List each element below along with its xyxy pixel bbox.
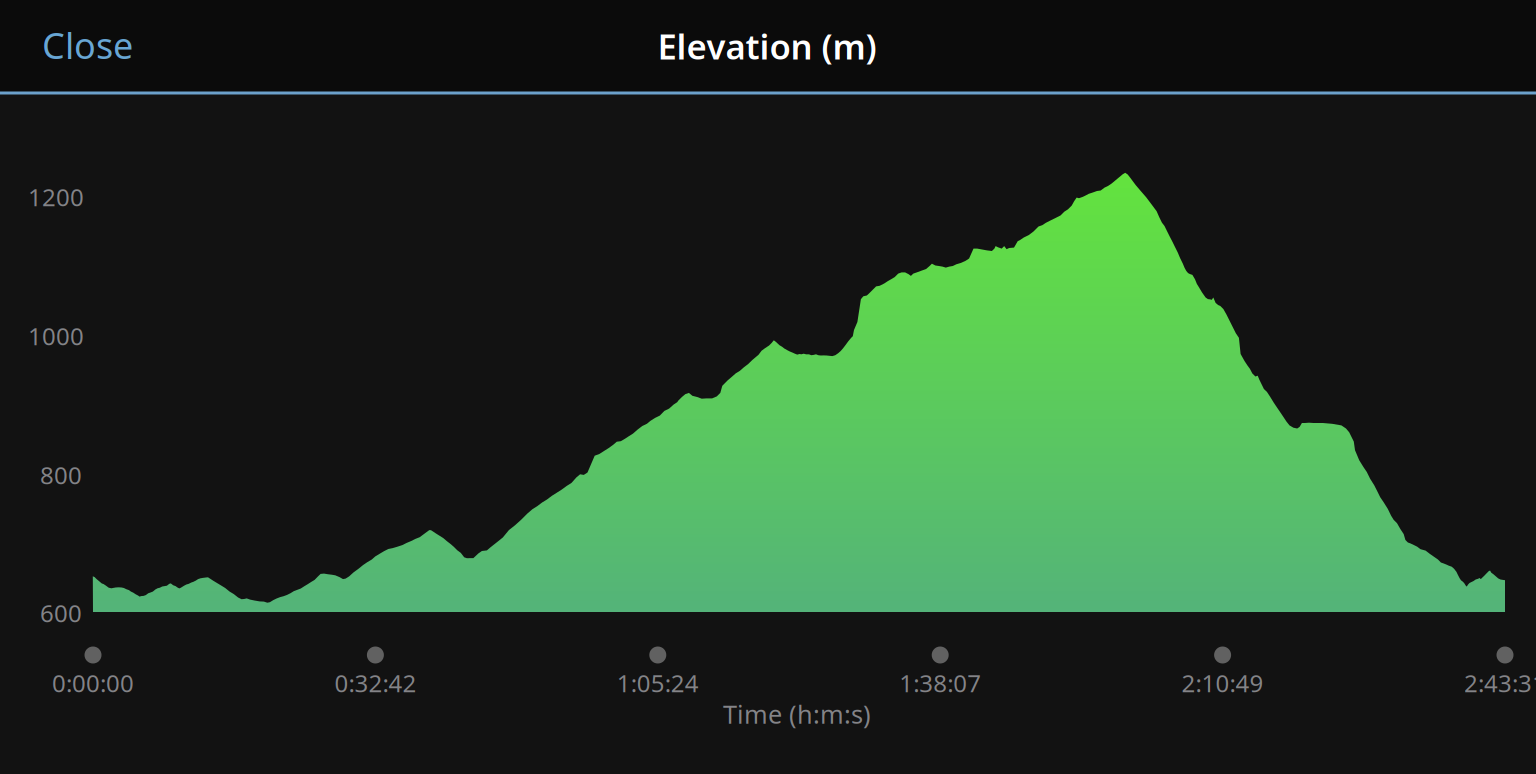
staticText: 800 <box>40 459 82 491</box>
staticText: 1000 <box>28 320 84 352</box>
staticText: 2:43:31 <box>1464 667 1536 699</box>
staticText: 1:05:24 <box>617 667 699 699</box>
staticText: 1200 <box>28 181 84 213</box>
staticText: 0:00:00 <box>52 667 134 699</box>
staticText: 2:10:49 <box>1182 667 1264 699</box>
staticText: Elevation (m) <box>657 23 876 69</box>
button[interactable]: Close <box>42 12 172 78</box>
staticText: 1:38:07 <box>899 667 981 699</box>
staticText: 600 <box>40 597 82 629</box>
staticText: Close <box>42 21 133 69</box>
staticText: 0:32:42 <box>334 667 416 699</box>
staticText: Time (h:m:s) <box>723 697 871 731</box>
